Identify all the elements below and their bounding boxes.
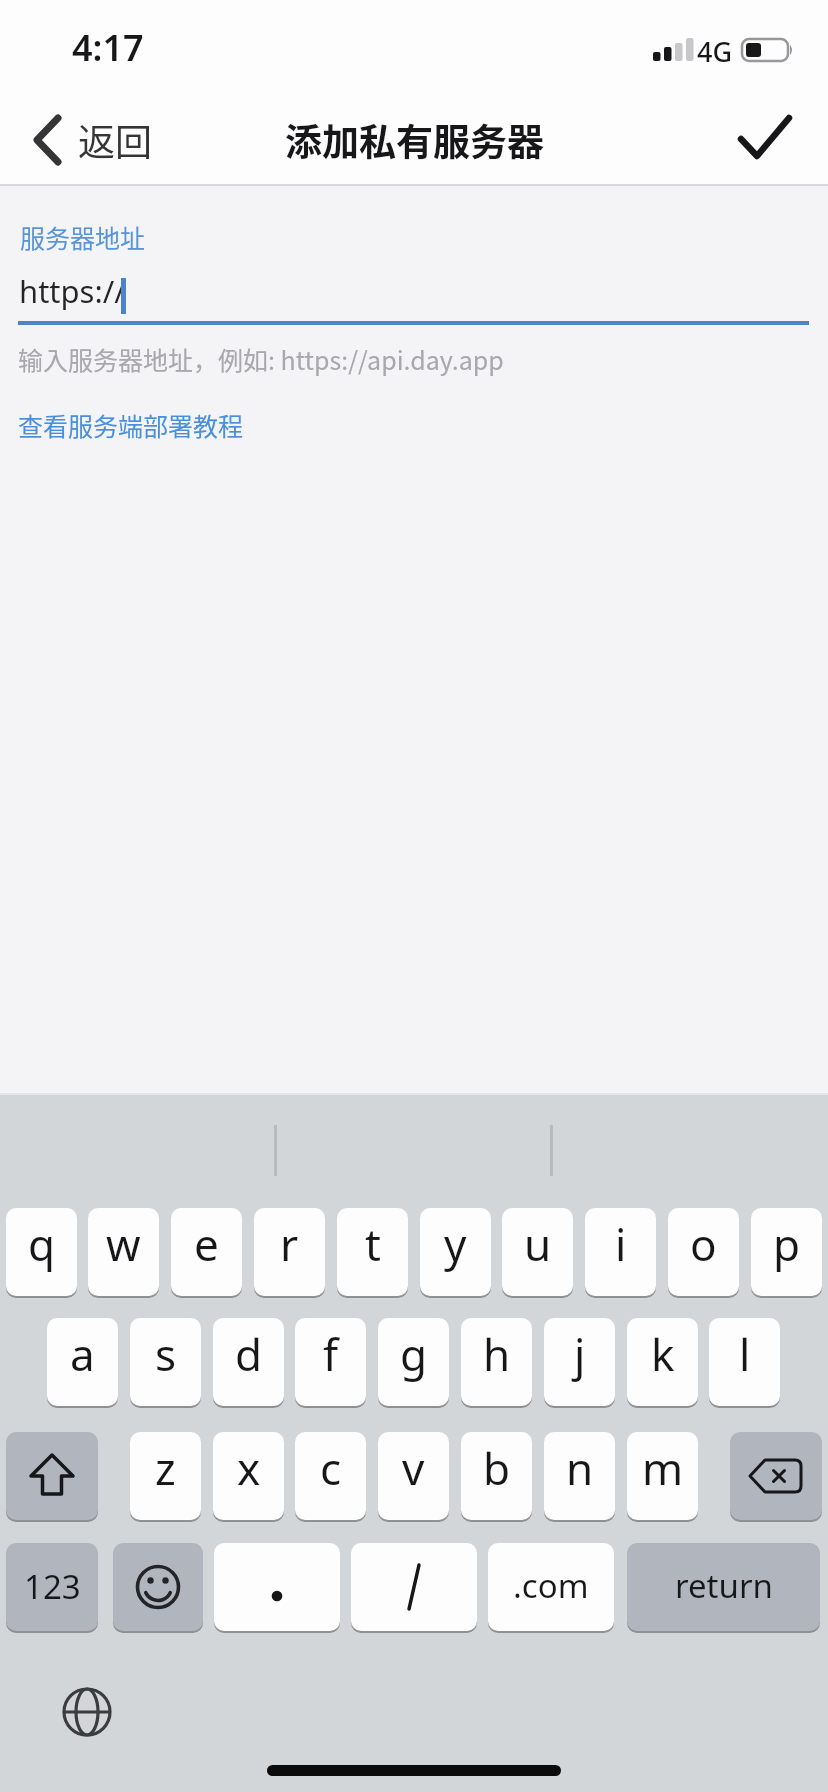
staticText: y xyxy=(444,1214,467,1274)
staticText: s xyxy=(155,1324,177,1384)
staticText: 4:17 xyxy=(72,23,144,72)
staticText: n xyxy=(566,1438,594,1498)
staticText: https:// xyxy=(19,270,126,312)
staticText: 服务器地址 xyxy=(20,219,146,255)
staticText: o xyxy=(690,1214,717,1274)
staticText: .com xyxy=(513,1563,589,1608)
staticText: f xyxy=(323,1324,339,1384)
staticText: x xyxy=(237,1438,261,1498)
staticText: return xyxy=(675,1563,773,1608)
staticText: m xyxy=(642,1438,684,1498)
staticText: 输入服务器地址，例如: https://api.day.app xyxy=(18,341,504,377)
staticText: 查看服务端部署教程 xyxy=(18,407,244,443)
staticText: z xyxy=(155,1438,176,1498)
staticText: h xyxy=(483,1324,511,1384)
staticText: 添加私有服务器 xyxy=(285,113,544,167)
staticText: r xyxy=(280,1214,299,1274)
staticText: i xyxy=(615,1214,627,1274)
staticText: l xyxy=(739,1324,751,1384)
staticText: w xyxy=(106,1214,141,1274)
staticText: j xyxy=(574,1324,586,1384)
staticText: a xyxy=(70,1324,95,1384)
staticText: v xyxy=(402,1438,425,1498)
staticText: p xyxy=(773,1214,801,1274)
staticText: e xyxy=(194,1214,219,1274)
staticText: d xyxy=(235,1324,263,1384)
staticText: u xyxy=(524,1214,552,1274)
staticText: 返回 xyxy=(78,113,152,167)
staticText: c xyxy=(320,1438,342,1498)
staticText: 4G xyxy=(697,33,733,70)
staticText: k xyxy=(651,1324,675,1384)
staticText: g xyxy=(400,1324,428,1384)
staticText: 123 xyxy=(24,1564,81,1609)
staticText: t xyxy=(365,1214,381,1274)
staticText: q xyxy=(28,1214,56,1274)
staticText: b xyxy=(483,1438,511,1498)
